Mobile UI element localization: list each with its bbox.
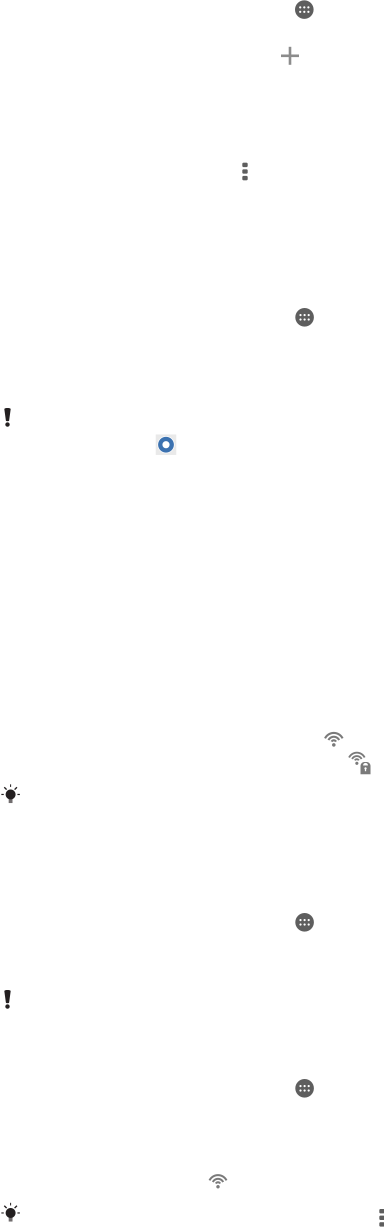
button[interactable]: Apps [295, 1079, 314, 1098]
button[interactable]: Apps [295, 913, 314, 932]
button[interactable]: More options [242, 163, 248, 180]
button[interactable]: Wi-Fi network [209, 1174, 227, 1188]
button[interactable]: More options [379, 1209, 384, 1227]
button[interactable]: Open Wi-Fi network [324, 732, 343, 747]
button[interactable]: Selected option [156, 434, 176, 455]
button[interactable]: Apps [295, 308, 314, 327]
button[interactable]: Add [281, 47, 299, 65]
button[interactable]: Apps [295, 0, 314, 19]
button[interactable]: Secured Wi-Fi network [348, 752, 371, 774]
